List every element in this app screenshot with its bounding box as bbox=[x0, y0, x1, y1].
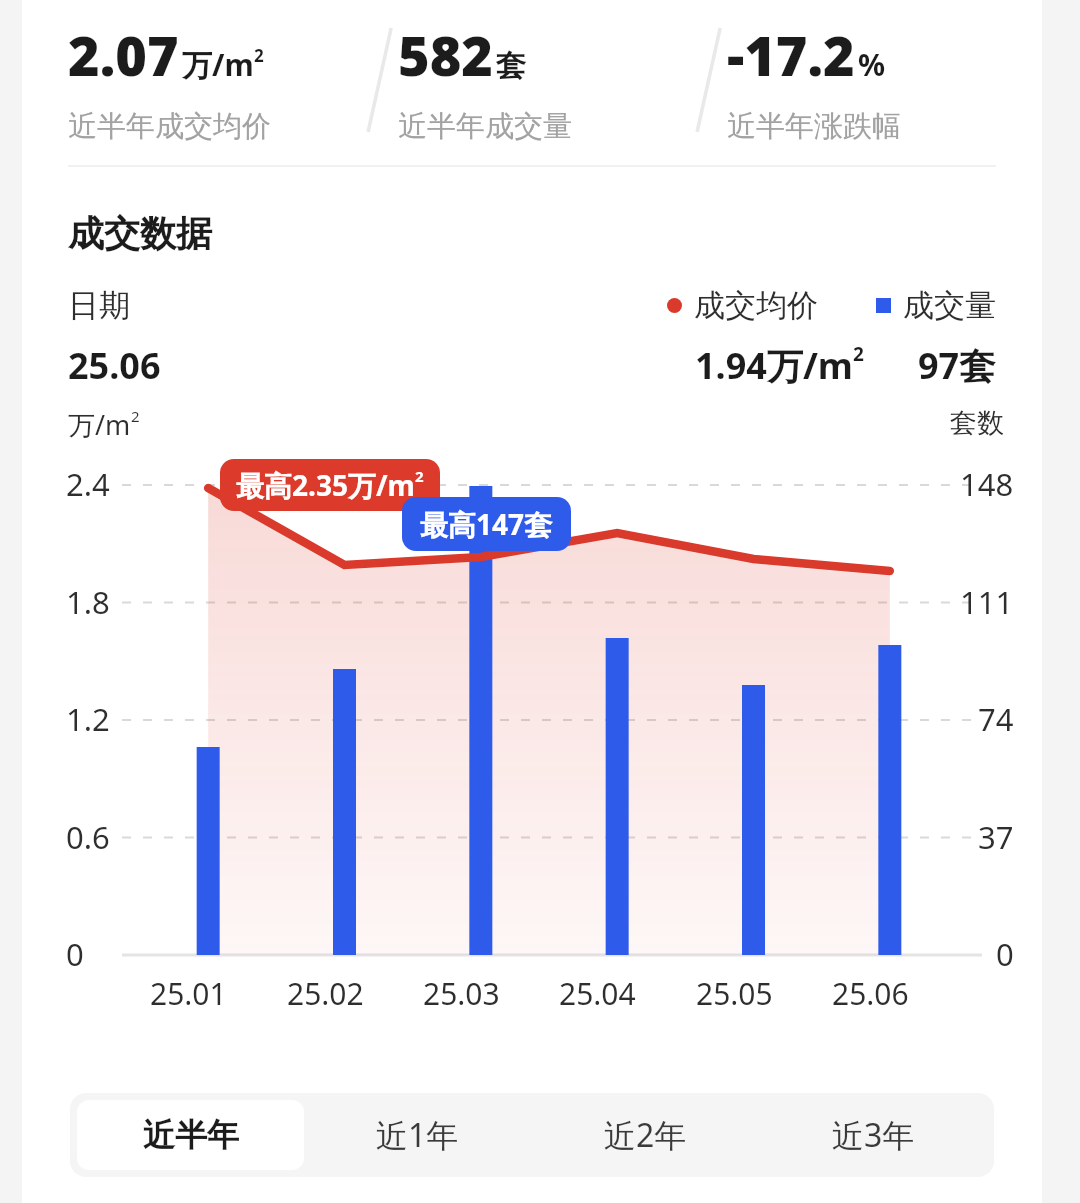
staticText: 1.2 bbox=[66, 698, 110, 740]
staticText: 25.04 bbox=[559, 973, 636, 1014]
staticText: 25.06 bbox=[68, 341, 161, 390]
staticText: -17.2 bbox=[727, 18, 855, 92]
staticText: 148 bbox=[960, 463, 1014, 505]
staticText: 2 bbox=[131, 406, 140, 426]
staticText: 近1年 bbox=[376, 1113, 459, 1157]
staticText: 成交量 bbox=[903, 286, 996, 325]
staticText: 近半年成交均价 bbox=[68, 108, 271, 145]
button[interactable]: -17.2 bbox=[727, 18, 1022, 145]
staticText: 近半年成交量 bbox=[398, 108, 572, 145]
staticText: % bbox=[858, 44, 886, 85]
staticText: 0.6 bbox=[66, 816, 110, 858]
staticText: 582 bbox=[398, 18, 493, 92]
staticText: 1.8 bbox=[66, 581, 110, 623]
staticText: 近半年涨跌幅 bbox=[727, 108, 901, 145]
staticText: 25.03 bbox=[423, 973, 500, 1014]
staticText: 25.05 bbox=[696, 973, 773, 1014]
staticText: 万/m bbox=[68, 406, 131, 443]
staticText: 套 bbox=[496, 47, 526, 85]
staticText: 近3年 bbox=[832, 1113, 915, 1157]
staticText: 万/m bbox=[182, 44, 254, 85]
staticText: 近2年 bbox=[604, 1113, 687, 1157]
staticText: 25.01 bbox=[150, 973, 227, 1014]
button[interactable]: 582 bbox=[398, 18, 693, 145]
staticText: 2.4 bbox=[66, 463, 110, 505]
button[interactable]: 成交均价 bbox=[667, 286, 818, 325]
staticText: 最高147套 bbox=[420, 505, 553, 543]
staticText: 97套 bbox=[918, 341, 996, 390]
button[interactable]: 2.07 bbox=[68, 18, 364, 145]
staticText: 成交数据 bbox=[68, 211, 212, 256]
staticText: 25.06 bbox=[832, 973, 909, 1014]
staticText: 74 bbox=[978, 698, 1014, 740]
button[interactable]: 近3年 bbox=[759, 1100, 987, 1170]
staticText: 0 bbox=[996, 933, 1014, 975]
staticText: 2 bbox=[415, 466, 424, 486]
staticText: 近半年 bbox=[143, 1115, 239, 1155]
staticText: 日期 bbox=[68, 286, 130, 325]
staticText: 2.07 bbox=[68, 18, 179, 92]
button[interactable]: 近半年 bbox=[77, 1100, 304, 1170]
staticText: 37 bbox=[978, 816, 1014, 858]
button[interactable]: 近1年 bbox=[304, 1100, 531, 1170]
staticText: 25.02 bbox=[287, 973, 364, 1014]
staticText: 成交均价 bbox=[694, 286, 818, 325]
staticText: 2 bbox=[254, 44, 264, 67]
button[interactable]: 成交量 bbox=[876, 286, 996, 325]
staticText: 1.94万/m bbox=[695, 341, 853, 390]
staticText: 最高2.35万/m bbox=[236, 466, 415, 504]
staticText: 111 bbox=[960, 581, 1014, 623]
staticText: 2 bbox=[853, 341, 864, 367]
staticText: 0 bbox=[66, 933, 84, 975]
button[interactable]: 近2年 bbox=[531, 1100, 759, 1170]
staticText: 套数 bbox=[950, 406, 1004, 440]
